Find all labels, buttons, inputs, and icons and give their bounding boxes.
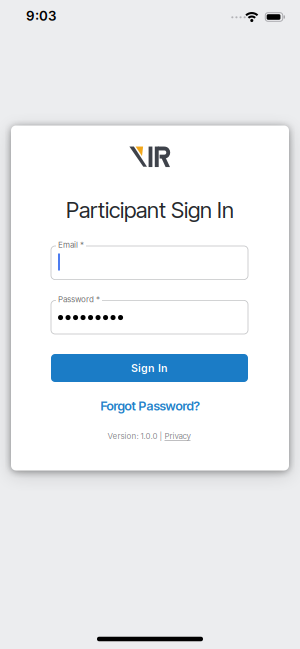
- staticText: Privacy: [164, 431, 190, 441]
- button[interactable]: Sign In: [51, 354, 248, 382]
- staticText: Participant Sign In: [66, 197, 234, 223]
- button[interactable]: Email: [51, 245, 248, 279]
- staticText: 9:03: [26, 8, 56, 24]
- button[interactable]: Privacy: [164, 431, 190, 441]
- staticText: Version: 1.0.0 |: [107, 431, 164, 441]
- staticText: Email *: [58, 240, 84, 250]
- staticText: Sign In: [131, 361, 168, 374]
- staticText: Forgot Password?: [100, 398, 199, 414]
- staticText: Password *: [58, 294, 100, 304]
- button[interactable]: Password: [51, 300, 248, 334]
- button[interactable]: Forgot Password?: [100, 398, 199, 414]
